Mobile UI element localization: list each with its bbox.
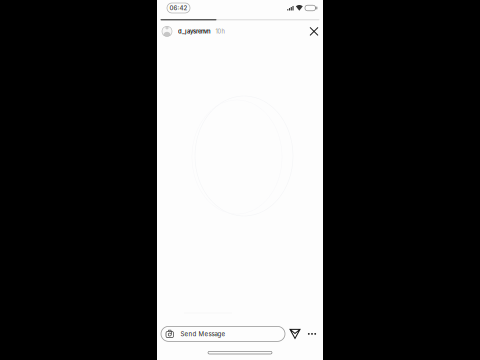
- button[interactable]: More options: [305, 328, 319, 340]
- button[interactable]: Send Message: [161, 326, 285, 341]
- button[interactable]: Close: [306, 23, 322, 39]
- button[interactable]: Send: [288, 327, 302, 340]
- staticText: d_jaysrenvn: [178, 28, 211, 35]
- staticText: 06:42: [169, 4, 187, 12]
- staticText: 10h: [215, 28, 224, 35]
- button[interactable]: d_jaysrenvn: [162, 26, 224, 36]
- staticText: Send Message: [180, 330, 225, 338]
